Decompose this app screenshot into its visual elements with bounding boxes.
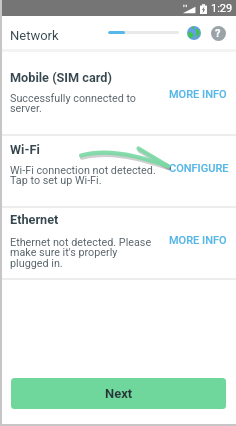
staticText: 1:29 xyxy=(211,2,233,15)
staticText: Successfully connected to server. xyxy=(10,92,142,115)
staticText: MORE INFO xyxy=(169,234,227,247)
staticText: Wi-Fi connection not detected. Tap to se… xyxy=(10,164,162,187)
staticText: MORE INFO xyxy=(169,88,227,101)
button[interactable]: Network xyxy=(4,24,65,47)
button[interactable]: CONFIGURE xyxy=(164,159,234,178)
button[interactable]: Wi-Fi xyxy=(0,136,236,206)
button[interactable]: Ethernet xyxy=(0,208,236,279)
staticText: Ethernet xyxy=(10,212,59,227)
staticText: Next xyxy=(105,386,133,401)
button[interactable]: Help xyxy=(210,25,226,41)
button[interactable]: Language xyxy=(186,25,202,41)
staticText: Network xyxy=(10,28,59,43)
staticText: Wi-Fi xyxy=(10,142,40,157)
staticText: Mobile (SIM card) xyxy=(10,70,112,85)
button[interactable]: MORE INFO xyxy=(164,85,232,104)
button[interactable]: Next xyxy=(11,378,226,409)
button[interactable]: Mobile (SIM card) xyxy=(0,52,236,134)
staticText: ? xyxy=(215,27,221,40)
staticText: CONFIGURE xyxy=(169,162,229,175)
button[interactable]: MORE INFO xyxy=(164,231,232,250)
staticText: Ethernet not detected. Please make sure … xyxy=(10,236,157,270)
